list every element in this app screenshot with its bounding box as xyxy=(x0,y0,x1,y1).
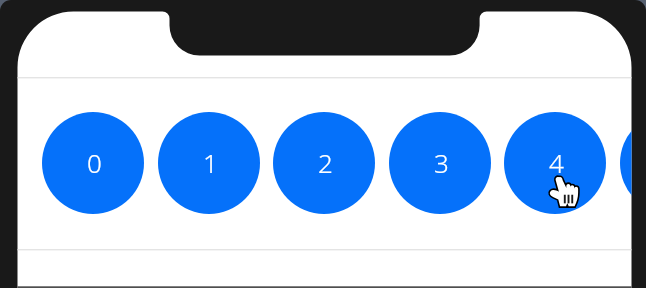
staticText: 1 xyxy=(203,145,218,180)
button[interactable]: 2 xyxy=(273,112,375,214)
button[interactable]: 4 xyxy=(504,112,606,214)
button[interactable]: 5 xyxy=(620,112,646,214)
staticText: 3 xyxy=(434,145,449,180)
staticText: 0 xyxy=(87,145,102,180)
button[interactable]: 3 xyxy=(389,112,491,214)
button[interactable]: 1 xyxy=(158,112,260,214)
staticText: 4 xyxy=(549,145,564,180)
staticText: 2 xyxy=(318,145,333,180)
button[interactable]: 0 xyxy=(42,112,144,214)
